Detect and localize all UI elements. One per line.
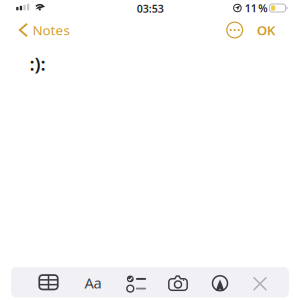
staticText: % [258,1,267,15]
button[interactable]: Camera [153,267,195,297]
staticText: 11 [245,1,257,15]
staticText: :): [29,51,45,76]
staticText: OK [257,21,276,39]
button[interactable]: Aa [69,267,111,297]
button[interactable]: Close [237,267,279,297]
button[interactable]: More [222,18,248,42]
button[interactable]: Markup [195,267,237,297]
staticText: Notes [32,21,69,39]
button[interactable]: Checklist [111,267,153,297]
button[interactable]: Table [27,267,69,297]
staticText: 03:53 [137,1,164,16]
button[interactable]: OK [253,17,300,43]
staticText: Aa [84,273,101,292]
button[interactable]: Notes [0,17,75,43]
